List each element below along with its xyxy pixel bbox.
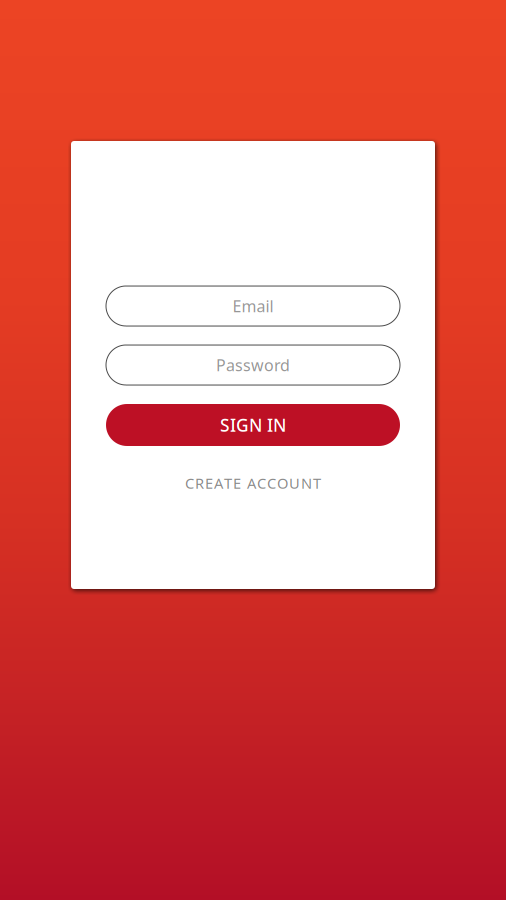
button[interactable]: SIGN IN — [106, 404, 400, 446]
button[interactable]: Create account — [106, 476, 400, 490]
staticText: SIGN IN — [220, 413, 286, 436]
button[interactable]: Email — [106, 286, 400, 326]
staticText: C R E A T E A C C O U N T — [185, 473, 321, 493]
staticText: Email — [232, 295, 273, 317]
staticText: Password — [216, 354, 290, 376]
button[interactable]: Password — [106, 345, 400, 385]
